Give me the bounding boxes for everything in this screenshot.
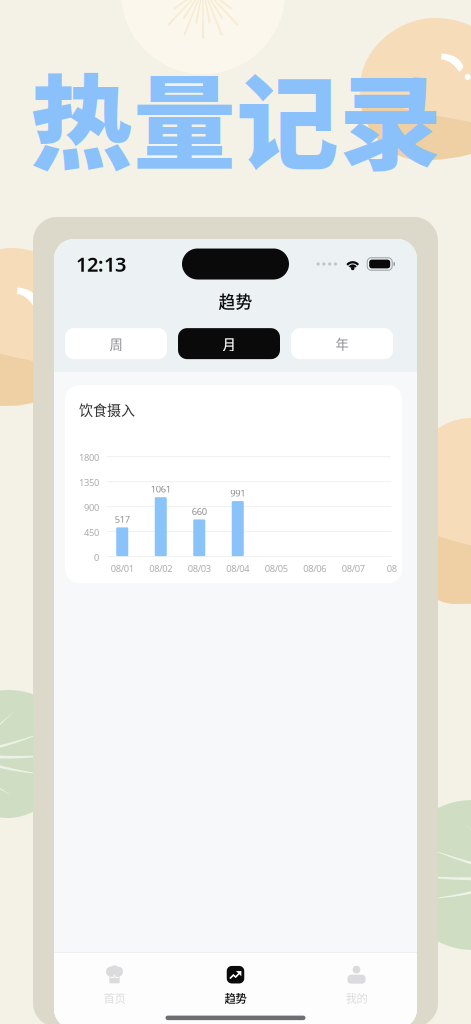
button[interactable]: 首页 [54,953,175,1005]
staticText: 首页 [103,990,125,1006]
staticText: 08/06 [303,562,326,574]
staticText: 我的 [345,990,367,1006]
staticText: 08/03 [188,562,211,574]
button[interactable]: 年 [291,328,393,359]
staticText: 月 [222,334,235,353]
staticText: 趋势 [218,289,252,313]
button[interactable]: 月 [178,328,280,359]
staticText: 1061 [151,483,171,495]
staticText: 1800 [79,451,99,463]
staticText: 周 [109,334,122,353]
staticText: 08/07 [342,562,365,574]
staticText: 12:13 [76,251,126,277]
staticText: 热量记录 [30,42,442,191]
staticText: 年 [335,334,348,353]
staticText: 991 [230,487,245,499]
staticText: 900 [84,501,99,513]
staticText: 450 [84,526,99,538]
staticText: 08/01 [111,562,134,574]
staticText: 08/02 [149,562,172,574]
staticText: 1350 [79,476,99,488]
button[interactable]: 趋势 [175,953,296,1005]
button[interactable]: 我的 [296,953,417,1005]
staticText: 660 [192,505,207,517]
button[interactable]: 周 [65,328,167,359]
staticText: 08/05 [265,562,288,574]
staticText: 0 [94,551,99,563]
staticText: 517 [115,513,130,525]
staticText: 饮食摄入 [79,399,135,419]
staticText: 08 [387,562,397,574]
staticText: 08/04 [226,562,249,574]
staticText: 趋势 [224,990,246,1006]
